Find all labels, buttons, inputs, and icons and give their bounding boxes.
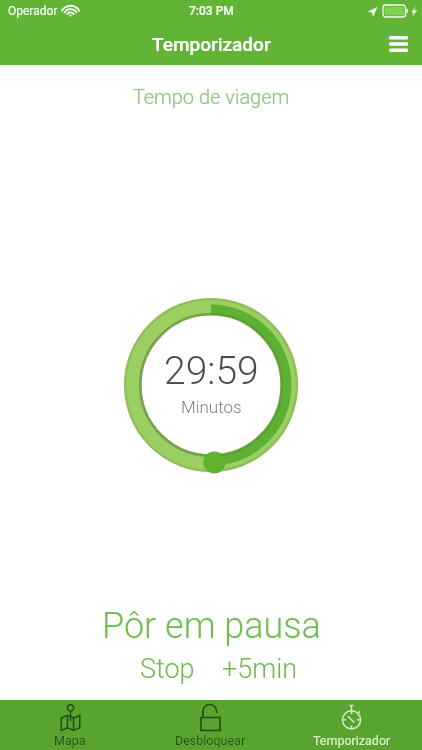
button[interactable]: Mapa [0,700,140,750]
button[interactable]: Temporizador [281,700,422,750]
button[interactable]: +5min [214,651,306,687]
staticText: Stop [140,653,195,685]
button[interactable]: Stop [132,651,203,687]
staticText: 7:03 PM [189,4,234,18]
staticText: Desbloquear [175,733,246,748]
staticText: Operador [8,4,58,18]
staticText: Mapa [54,733,86,748]
staticText: 29:59 [164,348,259,394]
staticText: +5min [222,653,298,685]
staticText: Minutos [181,397,242,417]
button[interactable]: Desbloquear [140,700,281,750]
staticText: Temporizador [152,33,271,55]
staticText: Tempo de viagem [0,85,422,108]
button[interactable]: Pôr em pausa [92,602,331,650]
button[interactable]: Menu [374,22,422,65]
staticText: Pôr em pausa [102,605,321,647]
staticText: Temporizador [313,733,391,748]
